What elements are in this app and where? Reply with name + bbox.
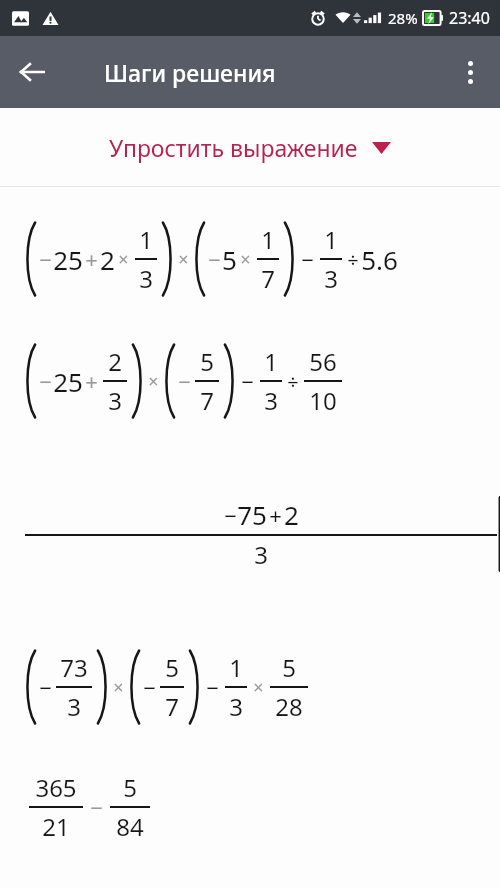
staticText: − <box>301 244 314 274</box>
staticText: Упростить выражение <box>109 132 358 163</box>
staticText: − <box>224 500 237 530</box>
staticText: − <box>206 672 219 702</box>
staticText: 3 <box>108 384 122 417</box>
staticText: 1 <box>324 223 338 256</box>
staticText: 5 <box>282 651 296 684</box>
staticText: × <box>178 247 189 272</box>
staticText: − <box>143 672 156 702</box>
staticText: × <box>240 247 251 272</box>
staticText: + <box>269 500 282 530</box>
staticText: 5 <box>222 242 237 277</box>
staticText: ÷ <box>287 368 299 395</box>
staticText: 3 <box>264 384 278 417</box>
staticText: 3 <box>67 690 81 723</box>
staticText: 25 <box>53 242 83 277</box>
button[interactable]: More options <box>446 48 494 96</box>
staticText: × <box>148 369 159 394</box>
staticText: 73 <box>60 651 88 684</box>
staticText: − <box>208 244 221 274</box>
staticText: 84 <box>116 810 144 843</box>
staticText: 1 <box>261 223 275 256</box>
staticText: 7 <box>165 690 179 723</box>
staticText: 7 <box>200 384 214 417</box>
staticText: × <box>118 247 129 272</box>
staticText: 5.6 <box>361 242 398 277</box>
staticText: 56 <box>309 345 337 378</box>
staticText: 1 <box>229 651 243 684</box>
staticText: 21 <box>42 810 70 843</box>
staticText: 25 <box>53 364 83 399</box>
staticText: 28% <box>388 8 418 28</box>
staticText: + <box>85 244 98 274</box>
button[interactable]: Back <box>8 48 56 96</box>
staticText: 365 <box>35 771 77 804</box>
staticText: 10 <box>309 384 337 417</box>
staticText: 5 <box>123 771 137 804</box>
staticText: − <box>39 366 52 396</box>
staticText: 23:40 <box>449 7 490 29</box>
staticText: − <box>39 244 52 274</box>
staticText: 2 <box>108 345 122 378</box>
staticText: 7 <box>261 262 275 295</box>
staticText: ÷ <box>347 246 359 273</box>
staticText: 1 <box>264 345 278 378</box>
staticText: 28 <box>275 690 303 723</box>
staticText: − <box>90 792 103 822</box>
staticText: 5 <box>200 345 214 378</box>
staticText: × <box>113 675 124 700</box>
staticText: − <box>241 366 254 396</box>
staticText: 3 <box>139 262 153 295</box>
staticText: 5 <box>165 651 179 684</box>
staticText: × <box>253 675 264 700</box>
staticText: 75 <box>237 497 267 532</box>
staticText: Шаги решения <box>104 57 276 88</box>
staticText: + <box>85 366 98 396</box>
staticText: 1 <box>139 223 153 256</box>
staticText: 2 <box>100 242 115 277</box>
staticText: 3 <box>324 262 338 295</box>
staticText: − <box>39 672 52 702</box>
staticText: 3 <box>229 690 243 723</box>
staticText: 2 <box>284 497 299 532</box>
staticText: − <box>178 366 191 396</box>
button[interactable]: Упростить выражение <box>0 108 500 186</box>
staticText: 3 <box>254 538 268 571</box>
